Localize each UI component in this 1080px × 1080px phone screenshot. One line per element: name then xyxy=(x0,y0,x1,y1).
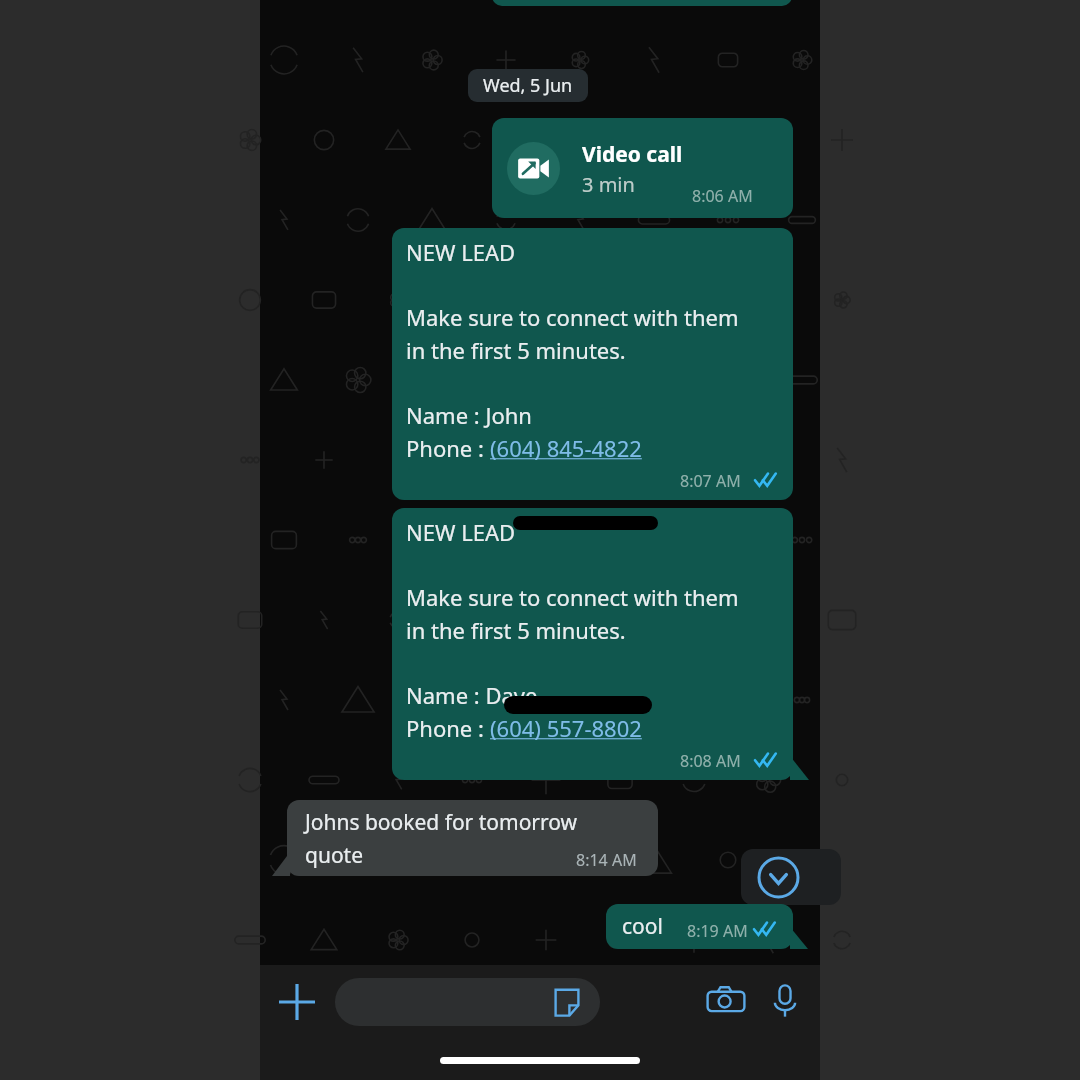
staticText: (604) 845-4822 xyxy=(490,433,642,463)
staticText: cool xyxy=(622,912,663,941)
staticText: Johns booked for tomorrow xyxy=(305,808,578,837)
staticText: 3 min xyxy=(582,171,635,198)
button[interactable]: Sticker xyxy=(552,988,582,1018)
button[interactable]: Camera xyxy=(703,978,749,1024)
button[interactable]: Video call xyxy=(492,118,793,218)
staticText: Wed, 5 Jun xyxy=(483,73,573,98)
button[interactable]: Johns booked for tomorrow xyxy=(287,800,658,876)
staticText: (604) 557-8802 xyxy=(490,713,642,743)
button[interactable]: cool xyxy=(606,904,793,949)
staticText: NEW LEAD xyxy=(406,237,516,267)
staticText: NEW LEAD xyxy=(406,517,516,547)
staticText: Make sure to connect with them xyxy=(406,302,739,332)
staticText: Name : Dave xyxy=(406,680,538,710)
staticText: Phone : xyxy=(406,713,490,743)
button[interactable]: Attach xyxy=(268,973,326,1031)
staticText: Make sure to connect with them xyxy=(406,582,739,612)
button[interactable]: Sticker xyxy=(335,978,600,1026)
staticText: 8:14 AM xyxy=(576,849,637,871)
button[interactable]: NEW LEAD xyxy=(392,228,793,500)
button[interactable]: NEW LEAD xyxy=(392,508,793,780)
staticText: Phone : xyxy=(406,433,490,463)
button[interactable]: Voice message xyxy=(762,978,808,1024)
staticText: 8:19 AM xyxy=(687,920,748,942)
staticText: Name : John xyxy=(406,400,532,430)
staticText: in the first 5 minutes. xyxy=(406,615,626,645)
staticText: 8:06 AM xyxy=(692,185,753,207)
staticText: in the first 5 minutes. xyxy=(406,335,626,365)
staticText: Video call xyxy=(582,140,683,169)
button[interactable]: Wed, 5 Jun xyxy=(468,69,588,102)
button[interactable]: Scroll to bottom xyxy=(741,849,841,905)
staticText: 8:07 AM xyxy=(680,470,741,492)
staticText: quote xyxy=(305,841,364,870)
staticText: 8:08 AM xyxy=(680,750,741,772)
